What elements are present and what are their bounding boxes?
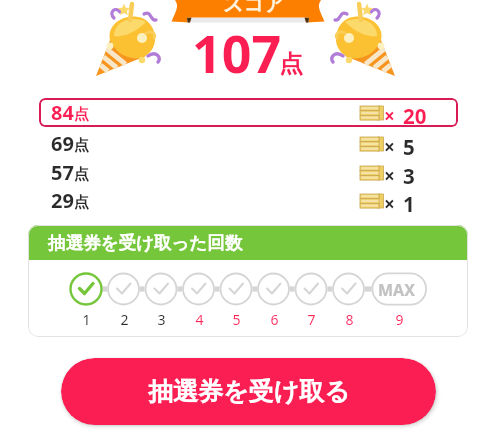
staticText: 4 [195,310,204,328]
staticText: 3 [403,162,415,190]
staticText: 5 [403,133,415,161]
button[interactable]: 84 [40,99,452,127]
staticText: 20 [403,102,427,130]
staticText: × [384,191,395,217]
staticText: 9 [395,310,404,328]
staticText: 点 [74,136,89,155]
staticText: MAX [378,279,415,301]
staticText: 57 [51,159,74,186]
button[interactable]: 29 [40,187,452,215]
button[interactable] [39,98,458,127]
button[interactable]: 57 [40,159,452,187]
staticText: × [384,134,395,160]
staticText: 点 [279,49,303,79]
staticText: 点 [74,193,89,212]
staticText: 抽選券を受け取った回数 [48,232,243,254]
button[interactable]: 69 [40,130,452,158]
staticText: 7 [307,310,316,328]
staticText: × [384,163,395,189]
staticText: 1 [82,310,91,328]
staticText: 5 [232,310,241,328]
staticText: 抽選券を受け取る [148,376,350,407]
staticText: スコア [223,0,285,17]
staticText: 点 [74,105,89,124]
staticText: 8 [345,310,354,328]
button[interactable]: 抽選券を受け取る [61,358,436,425]
staticText: 1 [403,190,415,218]
staticText: 3 [157,310,166,328]
staticText: 107 [192,17,282,88]
staticText: 点 [74,165,89,184]
staticText: 6 [270,310,279,328]
staticText: 69 [51,130,74,157]
staticText: 29 [51,187,74,214]
staticText: × [384,103,395,129]
staticText: 2 [120,310,129,328]
staticText: 84 [51,99,74,126]
